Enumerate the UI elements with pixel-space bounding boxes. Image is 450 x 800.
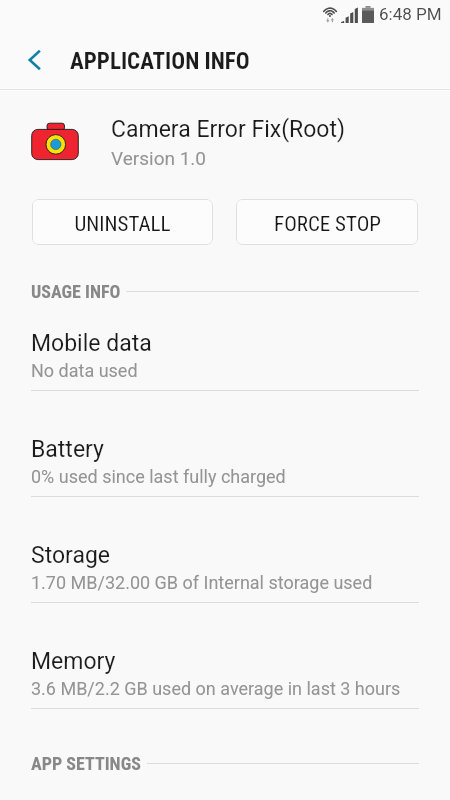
button[interactable]: Battery bbox=[0, 420, 450, 526]
staticText: 1.70 MB/32.00 GB of Internal storage use… bbox=[31, 572, 373, 593]
staticText: APPLICATION INFO bbox=[70, 48, 250, 75]
button[interactable]: Memory bbox=[0, 632, 450, 738]
button[interactable]: UNINSTALL bbox=[32, 199, 213, 245]
staticText: 3.6 MB/2.2 GB used on average in last 3 … bbox=[31, 678, 401, 699]
staticText: Version 1.0 bbox=[111, 147, 207, 169]
staticText: USAGE INFO bbox=[31, 281, 121, 302]
staticText: APP SETTINGS bbox=[31, 753, 141, 774]
staticText: Camera Error Fix(Root) bbox=[111, 116, 345, 143]
staticText: 0% used since last fully charged bbox=[31, 466, 286, 487]
button[interactable]: Storage bbox=[0, 526, 450, 632]
staticText: 6:48 PM bbox=[379, 4, 442, 24]
staticText: Memory bbox=[31, 648, 116, 675]
button[interactable]: Mobile data bbox=[0, 314, 450, 420]
staticText: UNINSTALL bbox=[74, 212, 171, 237]
button[interactable]: FORCE STOP bbox=[236, 199, 418, 245]
staticText: Mobile data bbox=[31, 330, 152, 357]
staticText: Storage bbox=[31, 542, 111, 569]
staticText: Battery bbox=[31, 436, 104, 463]
staticText: FORCE STOP bbox=[274, 212, 381, 237]
button[interactable]: Navigate up bbox=[12, 37, 58, 83]
staticText: No data used bbox=[31, 360, 138, 381]
